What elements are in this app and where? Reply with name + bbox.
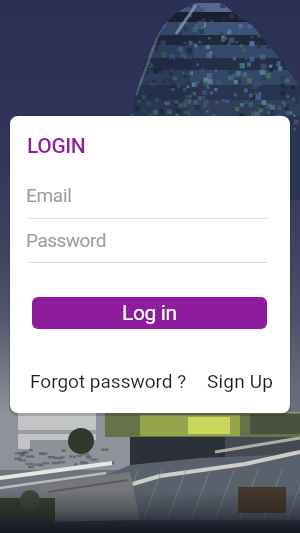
staticText: Log in xyxy=(122,301,177,326)
staticText: Email xyxy=(26,184,72,206)
staticText: Password xyxy=(26,229,106,251)
button[interactable]: Sign Up xyxy=(207,370,274,392)
button[interactable]: Log in xyxy=(32,297,267,329)
staticText: LOGIN xyxy=(27,134,86,159)
button[interactable]: Forgot password ? xyxy=(30,370,187,392)
